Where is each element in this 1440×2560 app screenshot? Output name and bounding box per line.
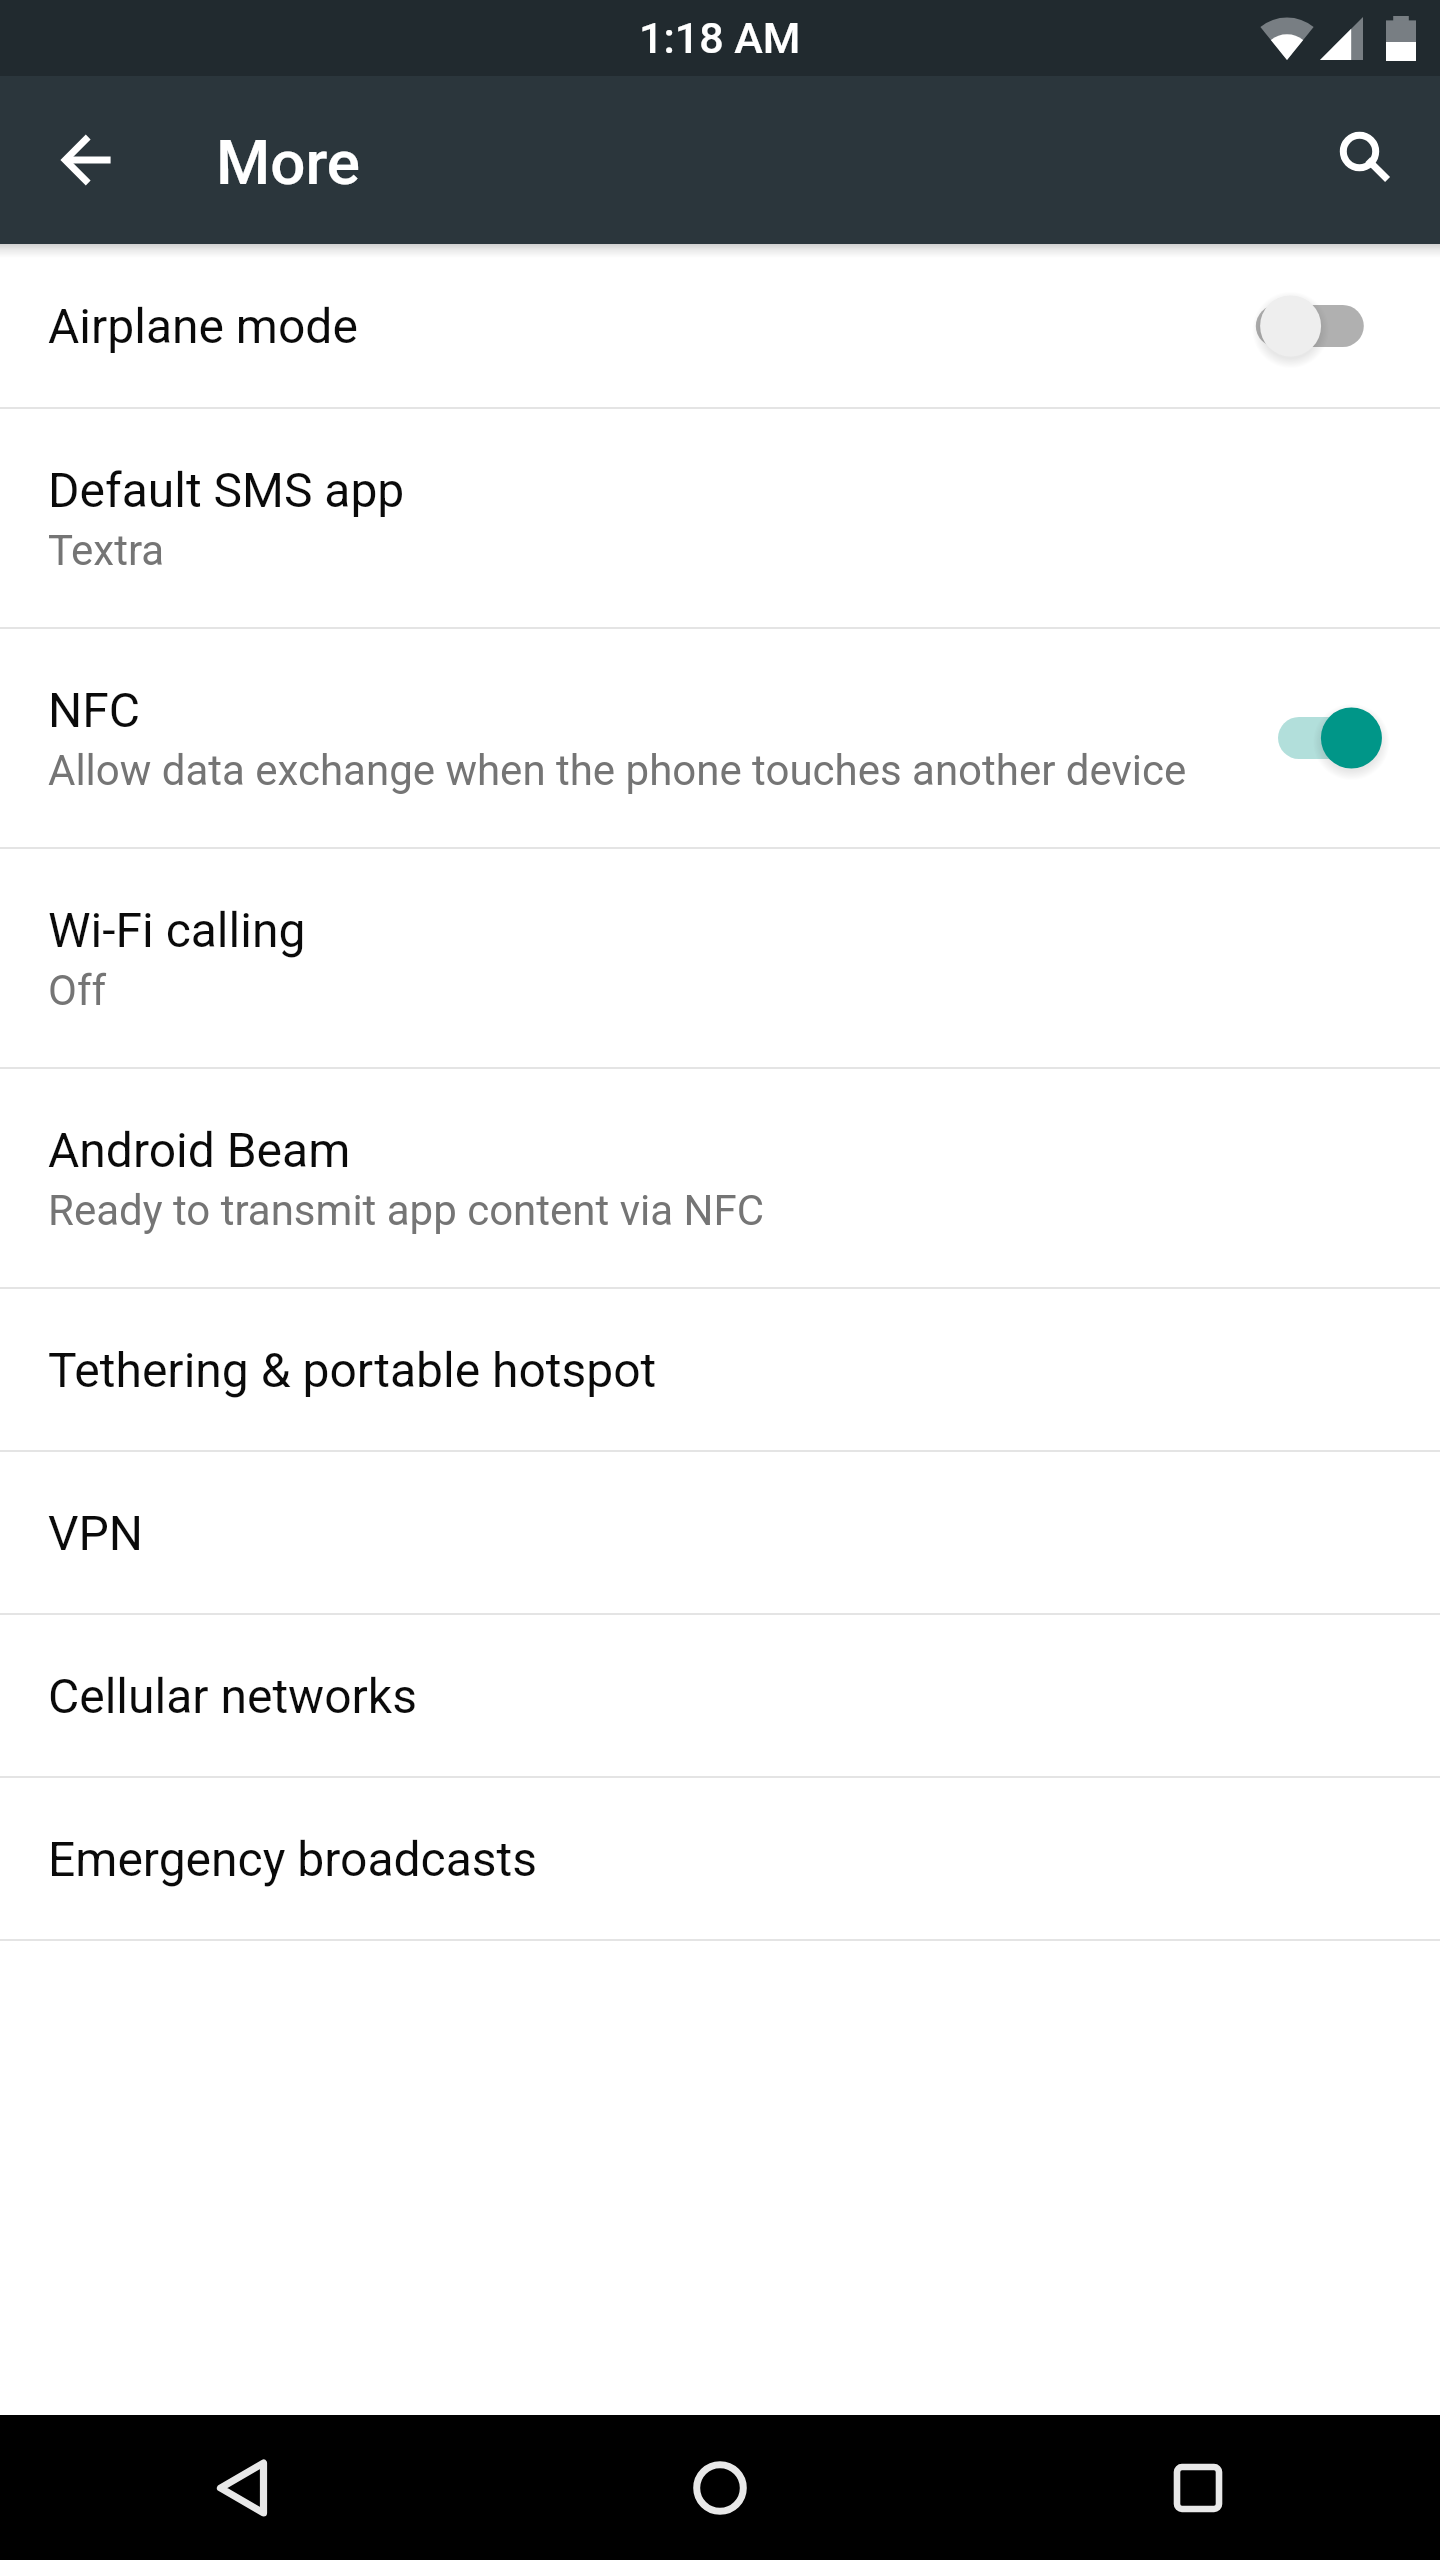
staticText: NFC <box>48 682 141 738</box>
staticText: Wi-Fi calling <box>48 902 306 958</box>
button[interactable]: Tethering & portable hotspot <box>0 1289 1440 1450</box>
staticText: Tethering & portable hotspot <box>48 1342 657 1398</box>
staticText: Allow data exchange when the phone touch… <box>48 746 1187 795</box>
staticText: VPN <box>48 1505 144 1561</box>
button[interactable]: Cellular networks <box>0 1615 1440 1776</box>
staticText: Textra <box>48 526 165 575</box>
button[interactable]: Emergency broadcasts <box>0 1778 1440 1939</box>
button[interactable]: Back <box>152 2415 332 2560</box>
button[interactable]: Airplane mode <box>0 244 1440 407</box>
button[interactable]: Android Beam <box>0 1069 1440 1287</box>
button[interactable]: Recent apps <box>1108 2415 1288 2560</box>
button[interactable]: VPN <box>0 1452 1440 1613</box>
button[interactable]: Back <box>13 88 157 232</box>
button[interactable]: Wi-Fi calling <box>0 849 1440 1067</box>
staticText: Off <box>48 966 107 1015</box>
staticText: Airplane mode <box>48 298 358 354</box>
staticText: 1:18 AM <box>639 13 801 63</box>
button[interactable]: Home <box>630 2415 810 2560</box>
button[interactable]: Default SMS app <box>0 409 1440 627</box>
staticText: Android Beam <box>48 1122 351 1178</box>
staticText: Ready to transmit app content via NFC <box>48 1186 765 1235</box>
staticText: Default SMS app <box>48 462 405 518</box>
staticText: Cellular networks <box>48 1668 417 1724</box>
button[interactable]: NFC <box>0 629 1440 847</box>
button[interactable]: Search <box>1288 88 1432 232</box>
button[interactable]: Toggle on <box>1252 678 1416 798</box>
button[interactable]: Toggle off <box>1252 266 1416 386</box>
staticText: Emergency broadcasts <box>48 1831 538 1887</box>
staticText: More <box>216 126 360 199</box>
